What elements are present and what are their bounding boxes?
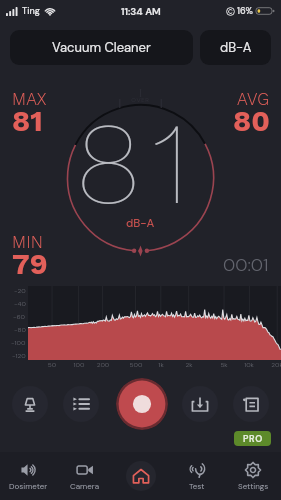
staticText: MIN [12, 232, 44, 252]
staticText: dB-A [126, 216, 155, 231]
staticText: 8 [76, 96, 141, 231]
button[interactable]: Record [116, 378, 168, 430]
staticText: 16% [237, 5, 253, 17]
staticText: Ting [22, 5, 40, 17]
staticText: Settings [238, 481, 269, 491]
button[interactable]: Dosimeter [0, 452, 57, 500]
button[interactable]: Notes [233, 386, 269, 422]
staticText: 200 [94, 361, 112, 369]
staticText: 2k [180, 361, 198, 369]
button[interactable]: PRO [234, 431, 271, 446]
staticText: 20k [268, 361, 281, 369]
staticText: 80 [233, 104, 270, 138]
button[interactable]: Home [113, 452, 169, 500]
button[interactable]: Vacuum Cleaner [10, 30, 193, 65]
button[interactable]: Recordings list [63, 386, 99, 422]
staticText: -40 [14, 300, 26, 308]
button[interactable]: Test [169, 452, 225, 500]
staticText: 100 [70, 361, 88, 369]
button[interactable]: dB-A [200, 30, 271, 65]
staticText: AVG [237, 89, 270, 109]
staticText: 500 [127, 361, 145, 369]
button[interactable]: Save [182, 386, 218, 422]
staticText: dB-A [220, 39, 252, 56]
staticText: 50 [43, 361, 61, 369]
staticText: Test [189, 481, 205, 491]
staticText: Camera [70, 481, 100, 491]
staticText: 81 [12, 104, 43, 138]
staticText: 5k [215, 361, 233, 369]
button[interactable]: Settings [225, 452, 281, 500]
staticText: 10k [240, 361, 258, 369]
staticText: Dosimeter [9, 481, 48, 491]
staticText: 0 [138, 247, 143, 255]
button[interactable]: Camera [57, 452, 113, 500]
staticText: PRO [243, 433, 263, 445]
staticText: MAX [12, 89, 47, 109]
staticText: -80 [14, 326, 26, 334]
staticText: 79 [12, 247, 48, 281]
staticText: -60 [13, 313, 26, 321]
button[interactable]: Calibrate [12, 386, 48, 422]
staticText: -20 [14, 287, 26, 295]
staticText: 1k [152, 361, 170, 369]
staticText: Vacuum Cleaner [52, 39, 151, 56]
staticText: 1 [152, 96, 189, 231]
staticText: -120 [12, 352, 26, 360]
staticText: -100 [11, 339, 26, 347]
staticText: 00:01 [223, 253, 269, 276]
staticText: 11:34 AM [121, 5, 161, 18]
